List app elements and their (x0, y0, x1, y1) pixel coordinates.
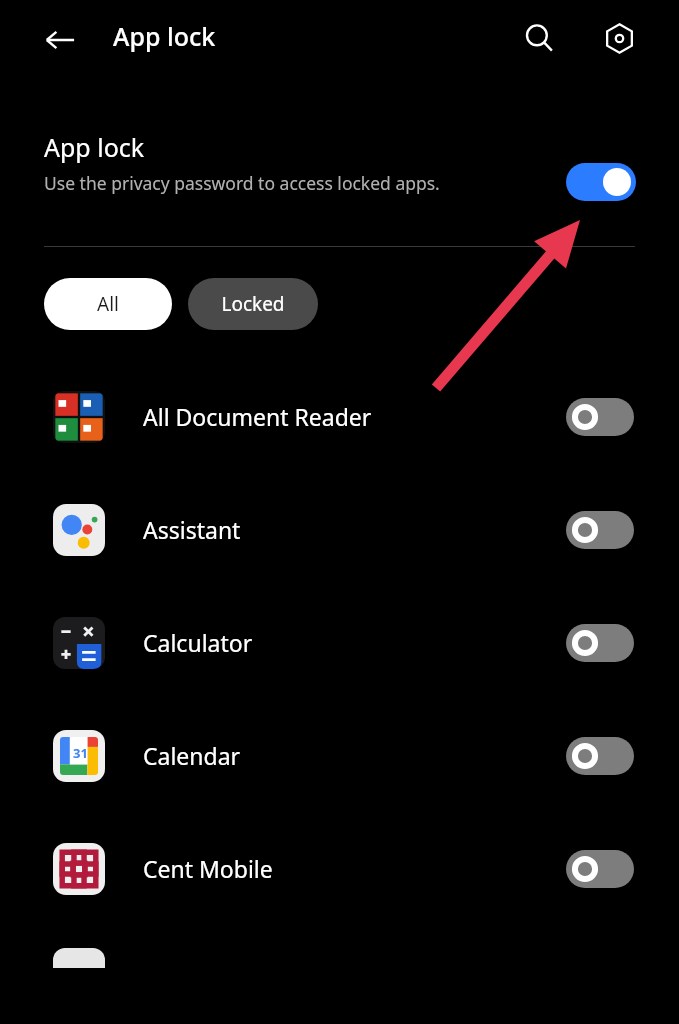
staticText: Locked (221, 291, 285, 317)
staticText: All Document Reader (143, 401, 372, 432)
staticText: Calendar (143, 740, 241, 771)
staticText: App lock (113, 19, 216, 53)
button[interactable]: Locked (188, 278, 318, 330)
button[interactable]: All (44, 278, 172, 330)
staticText: All (97, 291, 119, 317)
button[interactable]: App lock (0, 75, 679, 231)
button[interactable]: Assistant (0, 473, 679, 586)
button[interactable]: Assistant lock toggle (566, 511, 634, 549)
button[interactable]: Calculator lock toggle (566, 624, 634, 662)
staticText: 31 (73, 744, 88, 762)
staticText: Assistant (143, 514, 241, 545)
staticText: Cent Mobile (143, 853, 273, 884)
button[interactable]: Calculator (0, 586, 679, 699)
button[interactable]: Settings (592, 11, 646, 65)
staticText: Use the privacy password to access locke… (44, 171, 440, 195)
button[interactable]: Search (512, 11, 566, 65)
button[interactable]: Cent Mobile (0, 812, 679, 925)
button[interactable]: 31 (0, 699, 679, 812)
button[interactable]: Cent Mobile lock toggle (566, 850, 634, 888)
staticText: Calculator (143, 627, 253, 658)
button[interactable]: All Document Reader lock toggle (566, 398, 634, 436)
button[interactable]: Back (34, 14, 86, 66)
staticText: App lock (44, 130, 145, 164)
button[interactable]: Calendar lock toggle (566, 737, 634, 775)
button[interactable]: App lock toggle (566, 163, 636, 201)
button[interactable]: All Document Reader (0, 360, 679, 473)
